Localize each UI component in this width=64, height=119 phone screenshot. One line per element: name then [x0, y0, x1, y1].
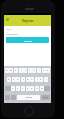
button[interactable]: z: [11, 86, 15, 91]
staticText: c: [22, 87, 24, 90]
staticText: v: [27, 87, 29, 90]
button[interactable]: next: [41, 95, 50, 100]
staticText: i: [39, 69, 40, 72]
button[interactable]: k: [39, 77, 43, 82]
staticText: Mail address: [6, 33, 18, 36]
staticText: q: [6, 69, 8, 72]
button[interactable]: b: [30, 86, 34, 91]
staticText: p: [47, 69, 49, 72]
staticText: f: [23, 78, 24, 81]
staticText: z: [12, 87, 14, 90]
staticText: Submit: [24, 39, 32, 42]
button[interactable]: t: [23, 68, 27, 73]
staticText: n: [36, 87, 38, 90]
button[interactable]: d: [16, 77, 20, 82]
button[interactable]: r: [19, 68, 23, 73]
button[interactable]: h: [30, 77, 34, 82]
staticText: h: [31, 78, 33, 81]
staticText: next: [43, 96, 48, 99]
button[interactable]: v: [26, 86, 30, 91]
staticText: u: [33, 69, 35, 72]
staticText: l: [46, 78, 47, 81]
staticText: m: [41, 87, 44, 90]
staticText: b: [31, 87, 33, 90]
staticText: k: [40, 78, 42, 81]
button[interactable]: a: [7, 77, 11, 82]
button[interactable]: p: [46, 68, 50, 73]
button[interactable]: m: [40, 86, 44, 91]
button[interactable]: o: [42, 68, 46, 73]
button[interactable]: w: [9, 68, 13, 73]
staticText: s: [13, 78, 15, 81]
staticText: r: [21, 69, 22, 72]
button[interactable]: Home: [24, 106, 34, 116]
staticText: o: [43, 69, 45, 72]
staticText: space: [26, 96, 32, 99]
staticText: w: [10, 69, 12, 72]
staticText: d: [17, 78, 19, 81]
button[interactable]: g: [26, 77, 30, 82]
button[interactable]: l: [44, 77, 48, 82]
button[interactable]: Menu: [5, 17, 10, 22]
staticText: Name: [6, 28, 12, 31]
button[interactable]: x: [16, 86, 20, 91]
button[interactable]: Submit: [6, 37, 49, 43]
button[interactable]: i: [37, 68, 41, 73]
button[interactable]: y: [28, 68, 32, 73]
staticText: g: [27, 78, 29, 81]
button[interactable]: j: [35, 77, 39, 82]
button[interactable]: q: [5, 68, 9, 73]
staticText: Register: [22, 19, 34, 23]
staticText: e: [15, 69, 17, 72]
button[interactable]: f: [21, 77, 25, 82]
staticText: t: [25, 69, 26, 72]
button[interactable]: u: [32, 68, 36, 73]
button[interactable]: n: [35, 86, 39, 91]
button[interactable]: space: [17, 95, 40, 100]
button[interactable]: e: [14, 68, 18, 73]
button[interactable]: s: [12, 77, 16, 82]
button[interactable]: c: [21, 86, 25, 91]
staticText: j: [37, 78, 38, 81]
staticText: a: [8, 78, 10, 81]
staticText: x: [17, 87, 19, 90]
staticText: y: [29, 69, 31, 72]
